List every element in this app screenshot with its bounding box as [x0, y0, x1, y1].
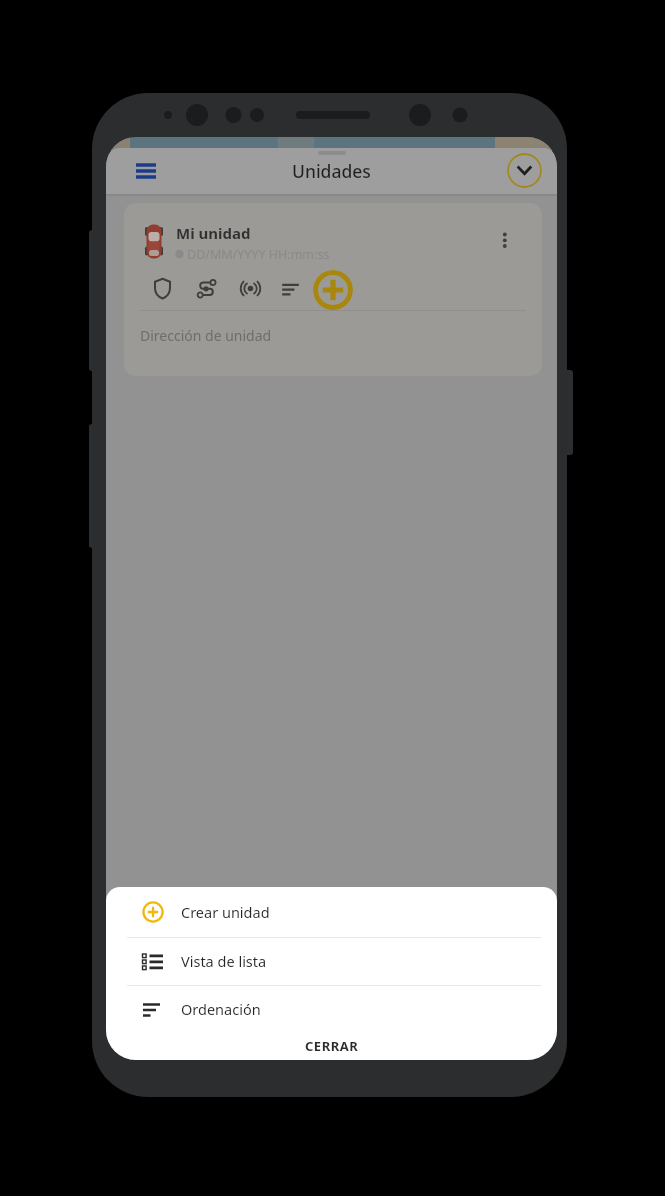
button[interactable]: Ordenación [106, 986, 557, 1032]
button[interactable] [492, 223, 518, 253]
button[interactable] [192, 274, 221, 303]
staticText: Vista de lista [181, 951, 267, 971]
button[interactable]: Mi unidad [124, 203, 542, 376]
button[interactable]: CERRAR [106, 1032, 557, 1060]
button[interactable]: Crear unidad [106, 889, 557, 935]
staticText: DD/MM/YYYY HH:mm:ss [187, 246, 330, 263]
button[interactable] [313, 270, 353, 310]
button[interactable]: Vista de lista [106, 938, 557, 984]
button[interactable] [507, 153, 542, 188]
staticText: CERRAR [305, 1037, 359, 1055]
staticText: Unidades [292, 159, 371, 183]
staticText: Ordenación [181, 999, 261, 1019]
staticText: Mi unidad [176, 223, 251, 243]
button[interactable] [276, 275, 305, 304]
staticText: Crear unidad [181, 902, 270, 922]
button[interactable] [132, 160, 160, 182]
button[interactable] [148, 274, 177, 303]
button[interactable] [236, 274, 265, 303]
staticText: Dirección de unidad [140, 326, 272, 345]
